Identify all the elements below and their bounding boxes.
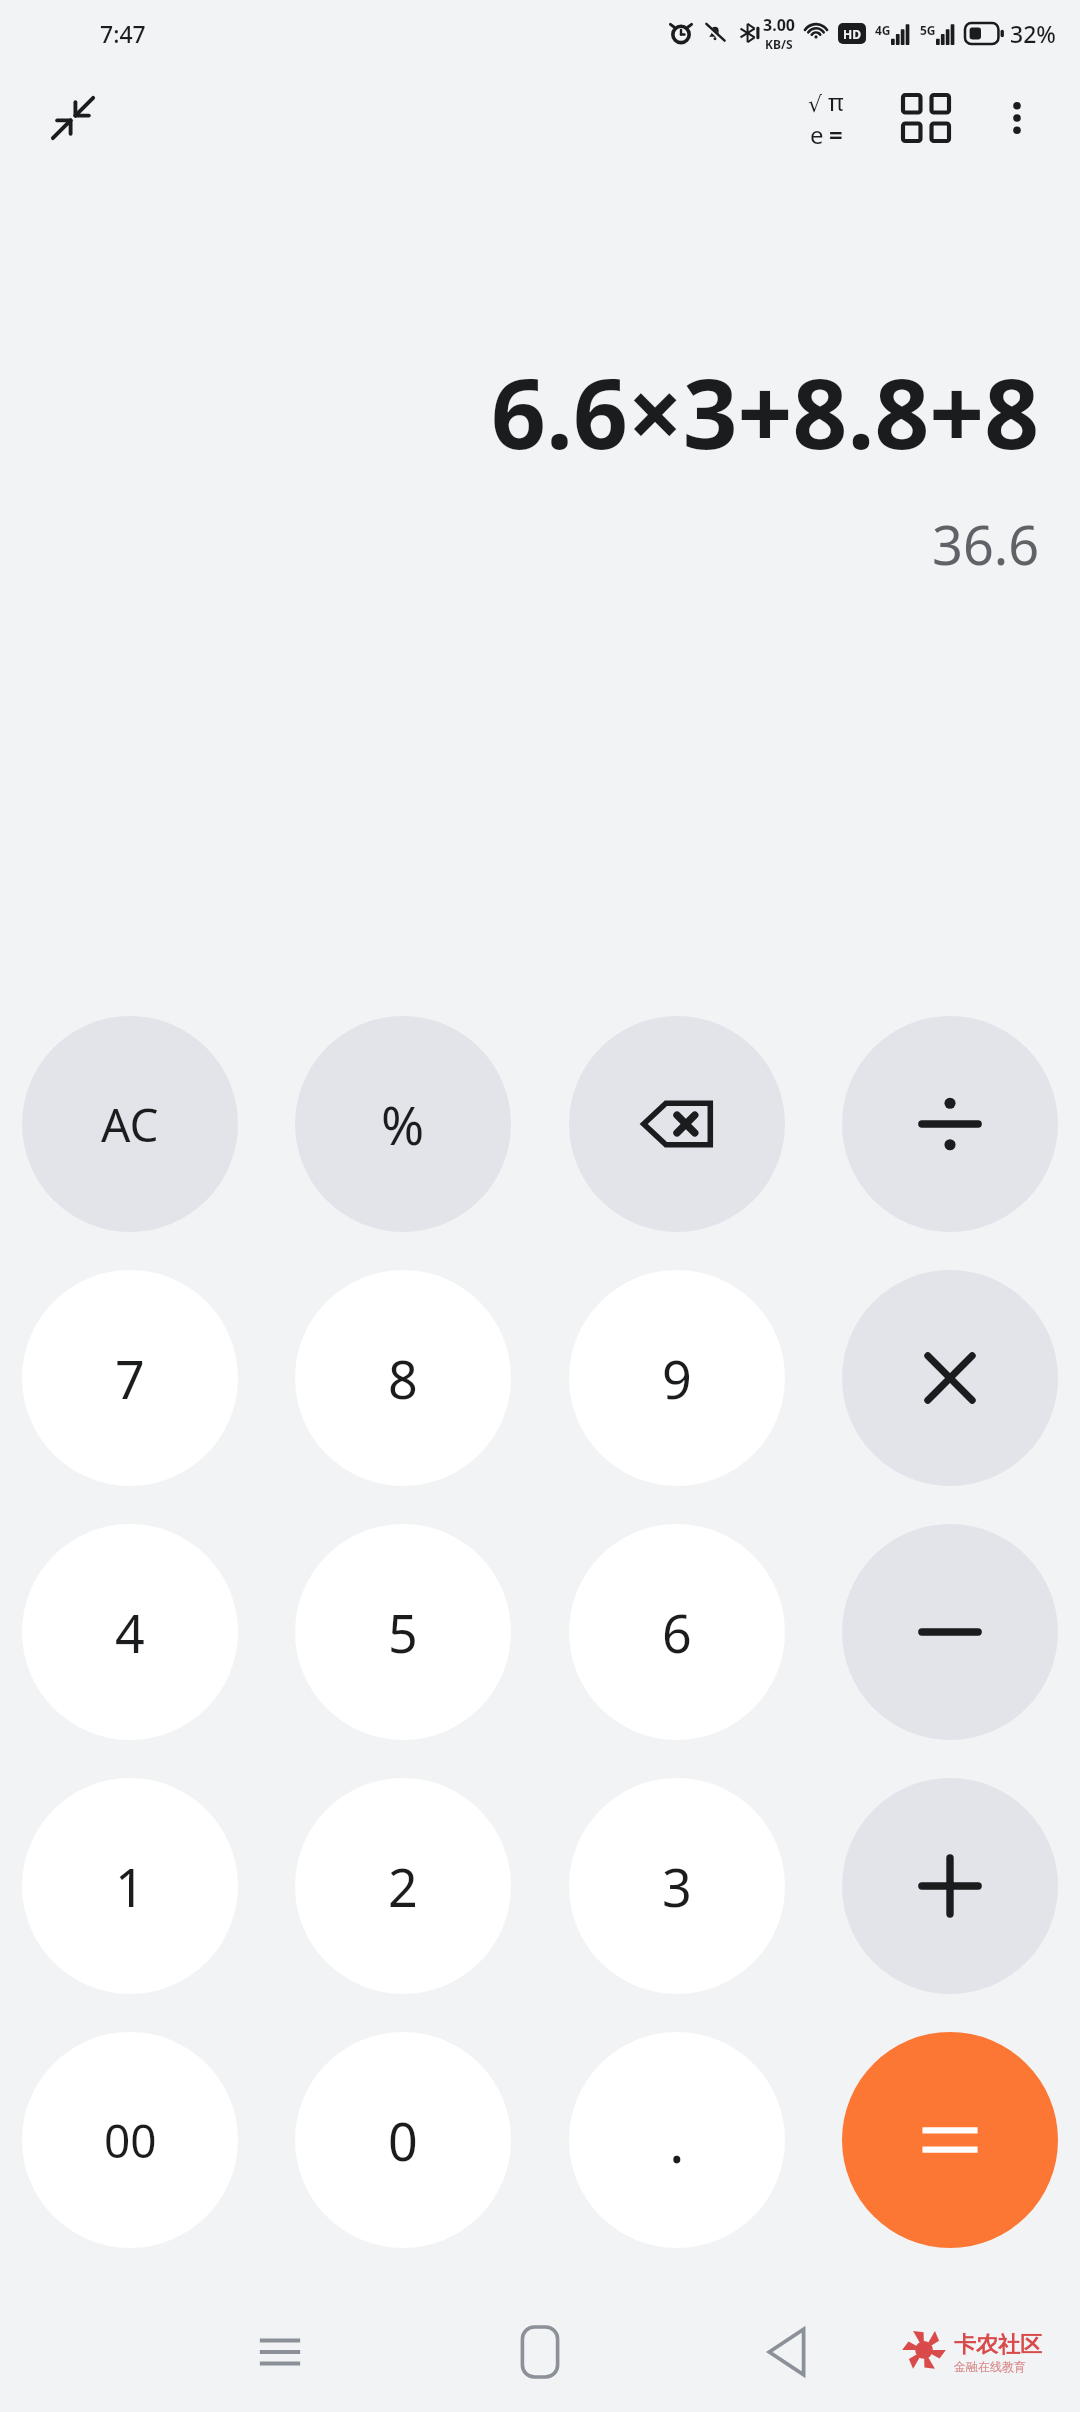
- button[interactable]: Keypad layout: [878, 70, 974, 166]
- staticText: √: [808, 92, 823, 118]
- staticText: KB/S: [765, 36, 793, 52]
- button[interactable]: 7: [22, 1270, 238, 1486]
- button[interactable]: Equals: [842, 2032, 1058, 2248]
- button[interactable]: Divide: [842, 1016, 1058, 1232]
- button[interactable]: 4: [22, 1524, 238, 1740]
- staticText: 0: [388, 2105, 418, 2176]
- button[interactable]: Recent apps: [234, 2306, 326, 2398]
- staticText: .: [669, 2101, 685, 2180]
- staticText: =: [829, 118, 843, 151]
- button[interactable]: 1: [22, 1778, 238, 1994]
- button[interactable]: Plus: [842, 1778, 1058, 1994]
- button[interactable]: 9: [569, 1270, 785, 1486]
- staticText: 00: [104, 2109, 157, 2172]
- staticText: 6: [662, 1597, 692, 1668]
- button[interactable]: AC: [22, 1016, 238, 1232]
- staticText: 4: [115, 1597, 145, 1668]
- button[interactable]: Multiply: [842, 1270, 1058, 1486]
- staticText: 32%: [1010, 18, 1056, 49]
- button[interactable]: Backspace: [569, 1016, 785, 1232]
- staticText: 卡农社区: [954, 2331, 1042, 2359]
- staticText: 6.6×3+8.8+8: [491, 346, 1040, 477]
- button[interactable]: 00: [22, 2032, 238, 2248]
- staticText: π: [828, 85, 844, 118]
- button[interactable]: %: [295, 1016, 511, 1232]
- staticText: 4G: [875, 22, 891, 38]
- button[interactable]: 8: [295, 1270, 511, 1486]
- button[interactable]: 5: [295, 1524, 511, 1740]
- staticText: 1: [115, 1851, 145, 1922]
- button[interactable]: More options: [974, 75, 1060, 161]
- staticText: %: [381, 1089, 425, 1160]
- button[interactable]: Minus: [842, 1524, 1058, 1740]
- staticText: e: [810, 118, 824, 151]
- button[interactable]: .: [569, 2032, 785, 2248]
- button[interactable]: 0: [295, 2032, 511, 2248]
- staticText: 5G: [920, 22, 936, 38]
- button[interactable]: Home: [494, 2306, 586, 2398]
- staticText: 3: [662, 1851, 692, 1922]
- staticText: AC: [101, 1093, 159, 1156]
- staticText: 3.00: [763, 14, 795, 36]
- button[interactable]: 3: [569, 1778, 785, 1994]
- staticText: HD: [843, 26, 861, 42]
- staticText: 8: [388, 1343, 418, 1414]
- staticText: 36.6: [932, 507, 1040, 581]
- staticText: 7:47: [100, 18, 146, 49]
- staticText: 2: [388, 1851, 418, 1922]
- button[interactable]: Scientific mode: [778, 70, 874, 166]
- staticText: 金融在线教育: [954, 2359, 1026, 2374]
- staticText: 5: [388, 1597, 418, 1668]
- staticText: 9: [662, 1343, 692, 1414]
- button[interactable]: 2: [295, 1778, 511, 1994]
- staticText: 7: [115, 1343, 145, 1414]
- button[interactable]: Collapse: [30, 75, 116, 161]
- button[interactable]: Back: [740, 2306, 832, 2398]
- button[interactable]: 6: [569, 1524, 785, 1740]
